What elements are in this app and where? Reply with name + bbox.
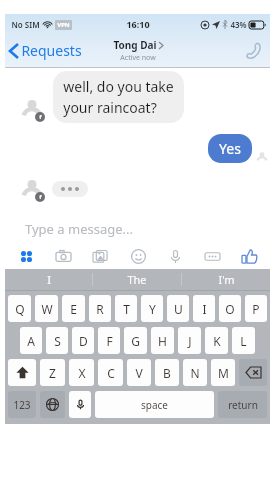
button[interactable]: T	[115, 295, 137, 322]
button[interactable]: Tong Dai	[111, 36, 165, 65]
button[interactable]: Yes	[208, 134, 252, 163]
staticText: Q	[15, 301, 25, 317]
button[interactable]: V	[127, 359, 151, 386]
staticText: space	[141, 398, 168, 412]
staticText: H	[158, 333, 167, 349]
staticText: P	[252, 301, 260, 317]
button[interactable]: Stickers	[125, 243, 151, 269]
staticText: return	[228, 398, 258, 412]
staticText: I	[47, 272, 51, 287]
button[interactable]: A	[20, 327, 42, 354]
staticText: 123	[13, 398, 31, 412]
button[interactable]: well, do you take	[53, 71, 184, 123]
button[interactable]: B	[155, 359, 179, 386]
staticText: The	[127, 272, 147, 287]
staticText: I	[202, 301, 207, 317]
button[interactable]: Call	[246, 43, 270, 59]
staticText: E	[70, 301, 77, 317]
button[interactable]: X	[69, 359, 94, 386]
button[interactable]: O	[219, 295, 241, 322]
button[interactable]: S	[46, 327, 68, 354]
staticText: Type a message...	[25, 220, 133, 238]
staticText: M	[218, 365, 229, 381]
button[interactable]: Photos	[87, 243, 113, 269]
button[interactable]: C	[98, 359, 123, 386]
button[interactable]: Y	[141, 295, 163, 322]
button[interactable]: Change keyboard	[40, 391, 65, 418]
staticText: I'm	[218, 272, 235, 287]
button[interactable]: K	[205, 327, 228, 354]
button[interactable]: U	[167, 295, 189, 322]
button[interactable]: Camera	[50, 243, 76, 269]
staticText: 43%	[230, 19, 247, 30]
button[interactable]: Z	[40, 359, 65, 386]
button[interactable]: Backspace	[239, 359, 267, 386]
staticText: your raincoat?	[63, 98, 157, 117]
staticText: Y	[149, 301, 156, 317]
button[interactable]: Shift	[8, 359, 36, 386]
staticText: A	[27, 333, 35, 349]
staticText: L	[240, 333, 247, 349]
button[interactable]: N	[183, 359, 207, 386]
button[interactable]: D	[72, 327, 94, 354]
staticText: S	[54, 333, 61, 349]
button[interactable]: I	[193, 295, 215, 322]
staticText: Z	[49, 365, 56, 381]
staticText: well, do you take	[63, 77, 174, 96]
staticText: VPN	[57, 21, 70, 29]
button[interactable]	[52, 181, 88, 197]
button[interactable]: Like	[236, 243, 262, 269]
button[interactable]: M	[211, 359, 235, 386]
button[interactable]: F	[98, 327, 120, 354]
button[interactable]: R	[89, 295, 111, 322]
staticText: B	[163, 365, 171, 381]
staticText: Tong Dai	[113, 38, 157, 52]
button[interactable]: G	[124, 327, 147, 354]
staticText: F	[106, 333, 113, 349]
staticText: Active now	[120, 53, 156, 63]
button[interactable]: space	[95, 391, 214, 418]
staticText: G	[131, 333, 140, 349]
staticText: 16:10	[126, 18, 150, 30]
button[interactable]: L	[232, 327, 255, 354]
staticText: f	[39, 113, 42, 121]
button[interactable]: Requests	[5, 37, 88, 64]
button[interactable]: The	[93, 269, 181, 290]
staticText: X	[78, 365, 86, 381]
button[interactable]: Type a message...	[5, 216, 270, 242]
staticText: f	[39, 193, 42, 201]
staticText: W	[41, 301, 53, 317]
staticText: C	[107, 365, 115, 381]
staticText: Requests	[21, 41, 82, 60]
button[interactable]: Dictate	[69, 391, 91, 418]
staticText: T	[123, 301, 130, 317]
button[interactable]: Voice message	[162, 243, 188, 269]
button[interactable]: I'm	[182, 269, 270, 290]
staticText: J	[188, 333, 192, 349]
button[interactable]: More apps	[13, 243, 39, 269]
staticText: R	[96, 301, 104, 317]
staticText: No SIM	[11, 19, 40, 30]
button[interactable]: return	[218, 391, 267, 418]
staticText: D	[79, 333, 88, 349]
button[interactable]: More	[199, 243, 225, 269]
button[interactable]: 123	[8, 391, 36, 418]
button[interactable]: Q	[8, 295, 31, 322]
button[interactable]: I	[5, 269, 92, 290]
staticText: K	[213, 333, 221, 349]
button[interactable]: W	[35, 295, 58, 322]
staticText: N	[190, 365, 200, 381]
button[interactable]: E	[62, 295, 85, 322]
button[interactable]: P	[245, 295, 267, 322]
staticText: Yes	[219, 139, 241, 158]
staticText: O	[225, 301, 235, 317]
button[interactable]: J	[178, 327, 201, 354]
staticText: V	[135, 365, 143, 381]
button[interactable]: H	[151, 327, 174, 354]
staticText: U	[174, 301, 183, 317]
